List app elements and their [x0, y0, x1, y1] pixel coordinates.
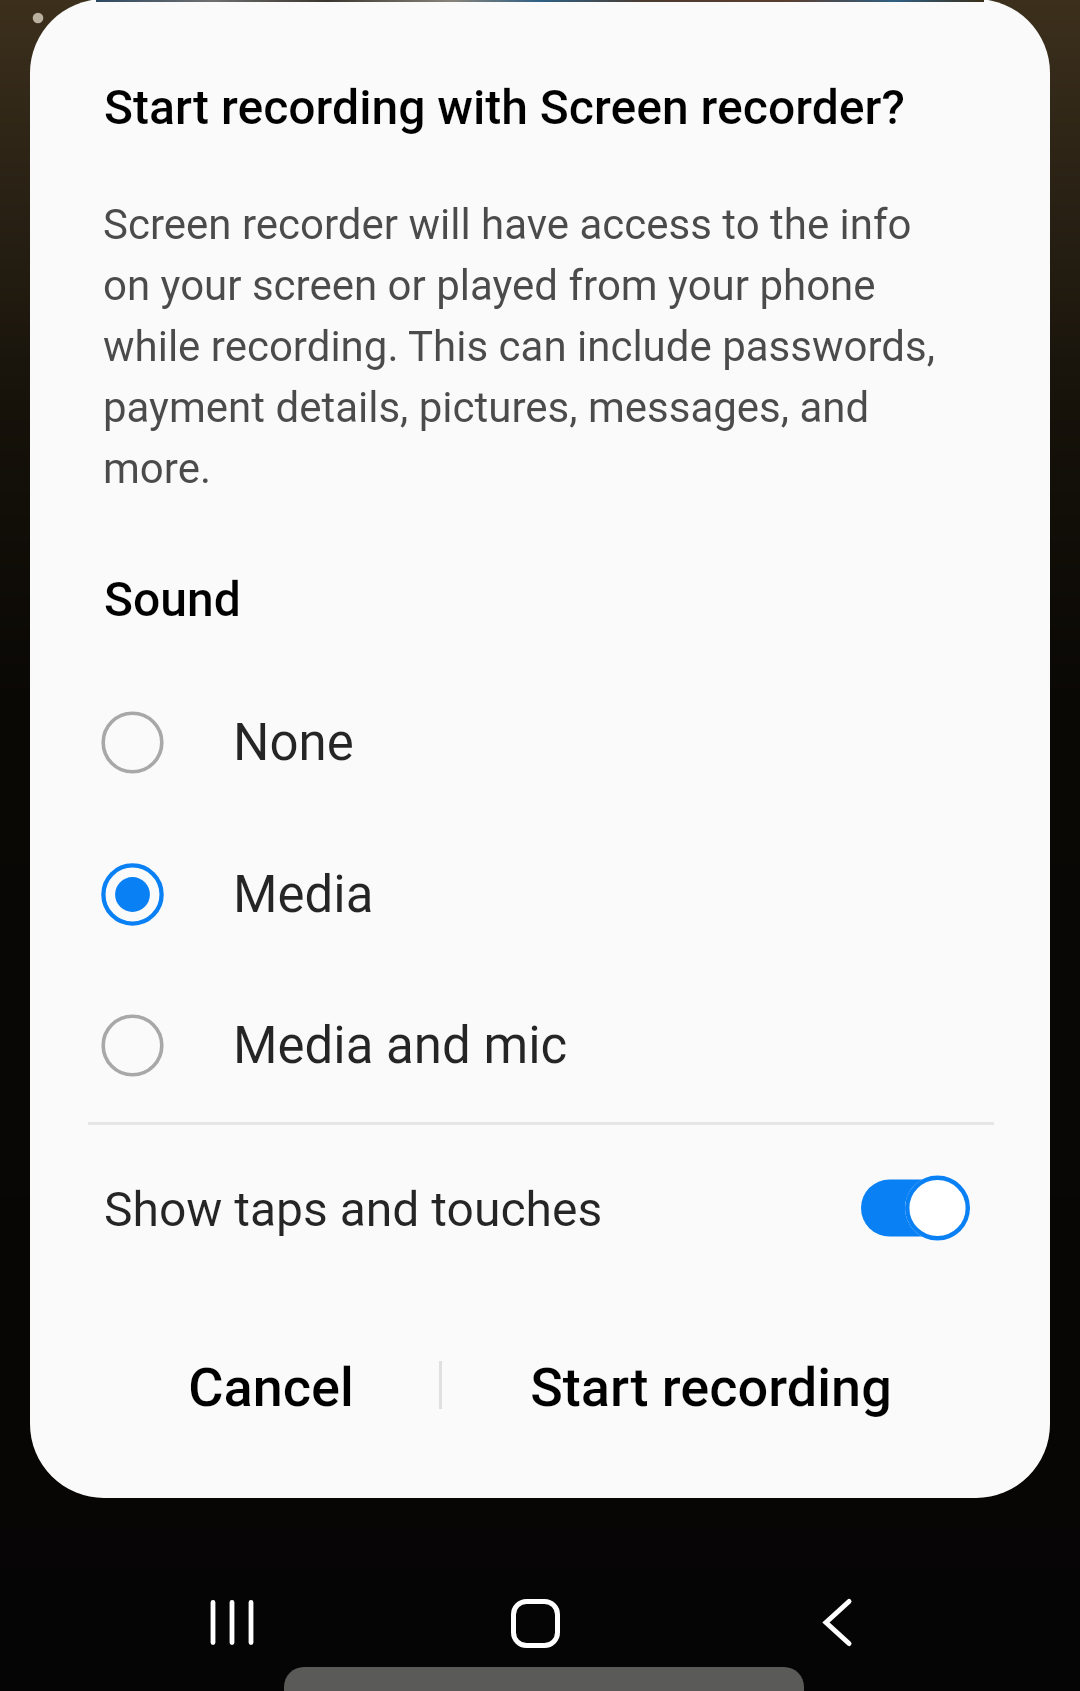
staticText: Cancel — [188, 1356, 354, 1419]
button[interactable]: Show taps and touches — [855, 1168, 980, 1248]
staticText: None — [233, 713, 354, 773]
button[interactable]: None — [30, 666, 1050, 818]
button[interactable]: Start recording — [440, 1300, 994, 1498]
button[interactable]: Back — [776, 1562, 898, 1684]
staticText: Media — [233, 865, 374, 925]
staticText: Start recording — [530, 1356, 892, 1419]
staticText: Screen recorder will have access to the … — [103, 200, 1003, 494]
button[interactable]: Home — [474, 1562, 596, 1684]
button[interactable]: Media and mic — [30, 969, 1050, 1121]
staticText: Show taps and touches — [104, 1181, 603, 1237]
button[interactable]: Show taps and touches — [30, 1128, 1050, 1288]
button[interactable]: Media — [30, 818, 1050, 970]
button[interactable]: Recent apps — [172, 1562, 294, 1684]
staticText: Start recording with Screen recorder? — [104, 79, 984, 135]
staticText: Media and mic — [233, 1016, 568, 1076]
staticText: Sound — [104, 571, 241, 627]
button[interactable]: Cancel — [88, 1300, 440, 1498]
